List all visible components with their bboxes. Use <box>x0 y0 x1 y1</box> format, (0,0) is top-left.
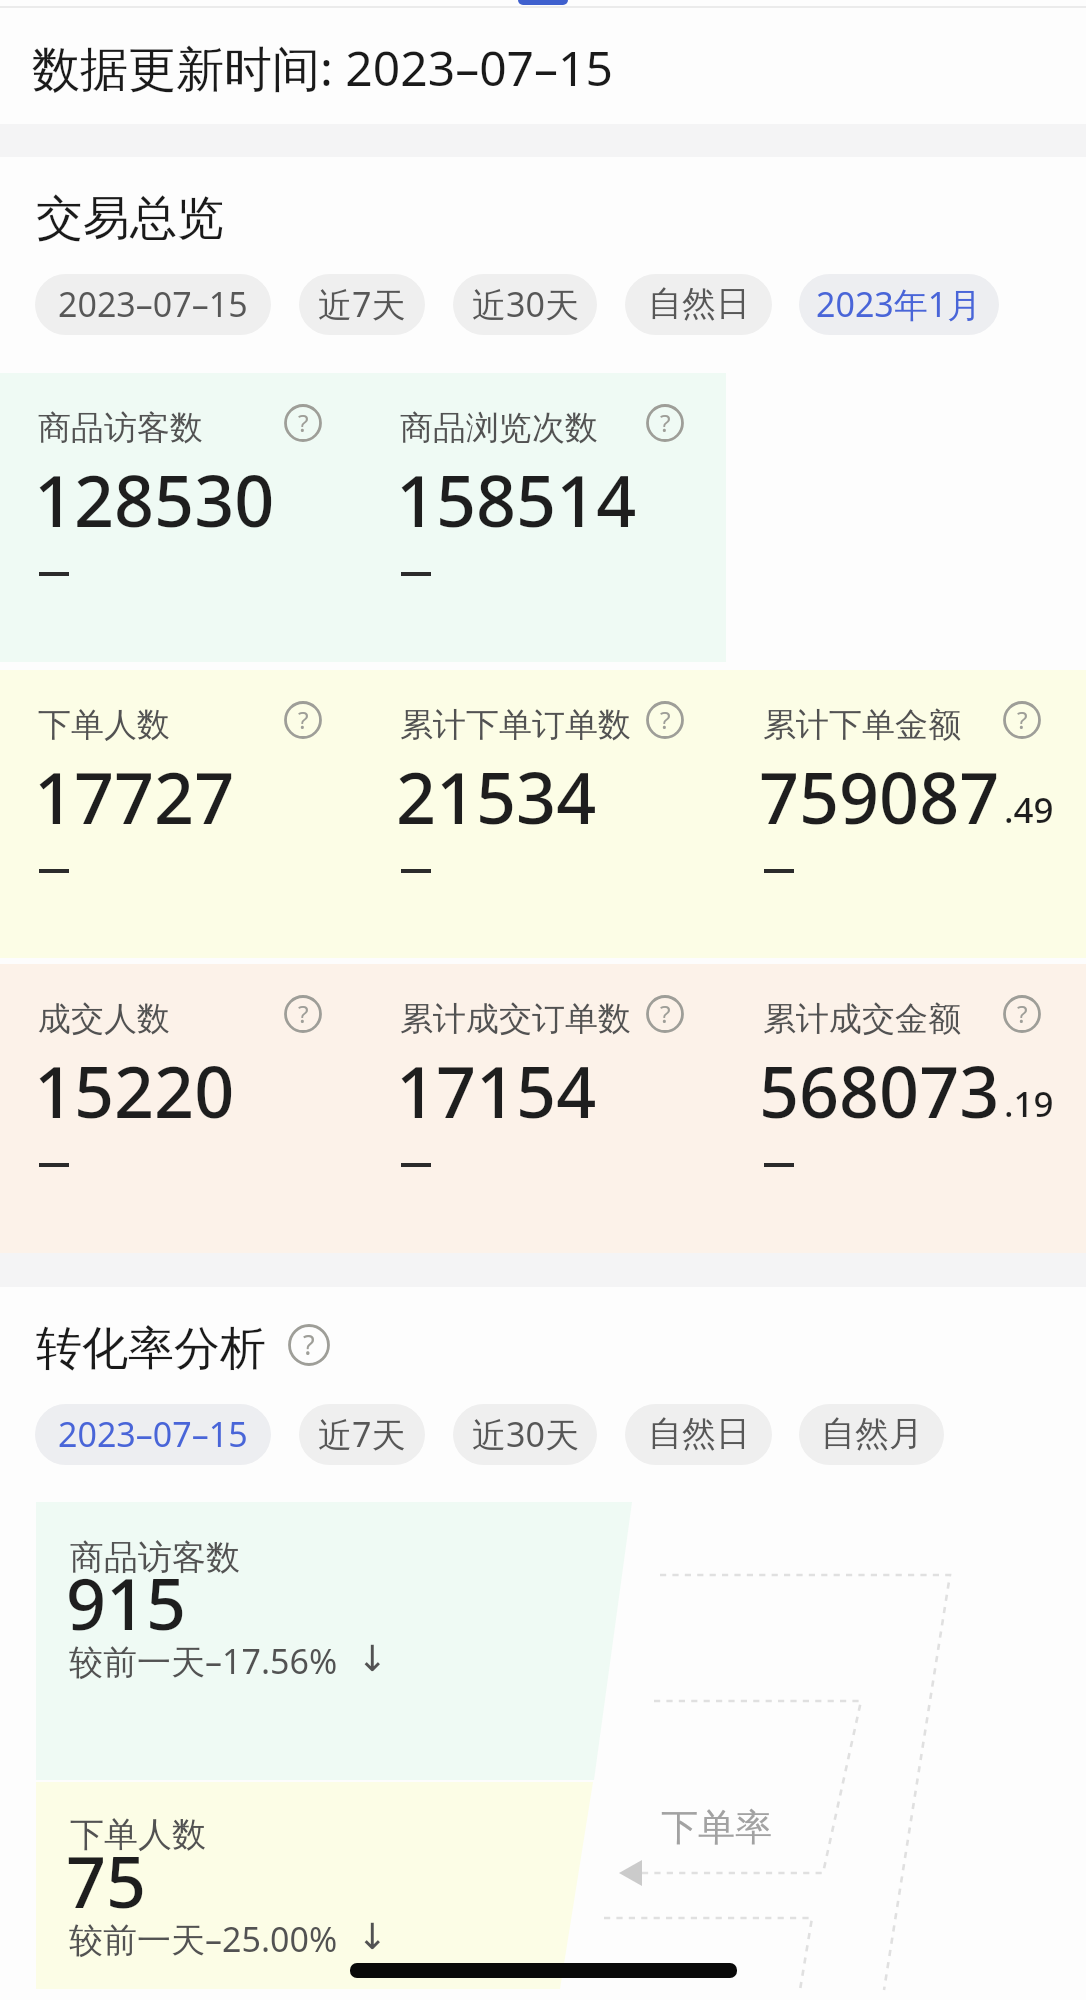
staticText: 下单人数 <box>38 704 170 746</box>
staticText: 累计成交金额 <box>763 998 961 1040</box>
staticText: 915 <box>66 1555 187 1650</box>
button[interactable]: 近30天 <box>453 274 597 335</box>
button[interactable]: 近30天 <box>453 1404 597 1465</box>
staticText: 自然日 <box>648 1412 750 1455</box>
staticText: 2023年1月 <box>816 281 982 327</box>
button[interactable]: 2023年1月 <box>799 274 999 335</box>
staticText: 交易总览 <box>36 189 224 248</box>
button[interactable]: 2023–07–15 <box>35 274 271 335</box>
staticText: ? <box>1017 997 1028 1030</box>
staticText: 15220 <box>34 1043 235 1138</box>
staticText: 累计下单订单数 <box>400 704 631 746</box>
staticText: 75 <box>66 1833 147 1928</box>
button[interactable]: 商品访客数 915 <box>36 1502 632 1780</box>
staticText: 759087 <box>759 749 1000 844</box>
button[interactable]: Help <box>284 995 322 1033</box>
button[interactable] <box>28 690 351 886</box>
staticText: 2023–07–15 <box>58 281 248 327</box>
staticText: ? <box>660 406 671 439</box>
button[interactable]: 自然日 <box>625 1404 772 1465</box>
staticText: ? <box>1017 703 1028 736</box>
staticText: 累计下单金额 <box>763 704 961 746</box>
staticText: 近30天 <box>472 1411 579 1457</box>
button[interactable]: Help <box>1003 701 1041 739</box>
button[interactable]: 近7天 <box>299 1404 425 1465</box>
button[interactable]: 下单人数 75 <box>36 1782 593 1989</box>
staticText: ↓ <box>357 1916 388 1958</box>
staticText: 21534 <box>396 749 597 844</box>
button[interactable] <box>753 984 1076 1180</box>
staticText: 158514 <box>396 452 637 547</box>
button[interactable] <box>390 690 713 886</box>
staticText: ↓ <box>357 1638 388 1680</box>
button[interactable]: 2023–07–15 <box>35 1404 271 1465</box>
staticText: ? <box>298 406 309 439</box>
staticText: 2023–07–15 <box>58 1411 248 1457</box>
staticText: 累计成交订单数 <box>400 998 631 1040</box>
button[interactable] <box>390 393 713 589</box>
staticText: 较前一天–25.00% <box>69 1916 338 1962</box>
staticText: 商品浏览次数 <box>400 407 598 449</box>
button[interactable]: 自然月 <box>799 1404 944 1465</box>
staticText: ? <box>660 997 671 1030</box>
staticText: 成交人数 <box>38 998 170 1040</box>
button[interactable]: Help <box>284 404 322 442</box>
button[interactable]: Help <box>646 995 684 1033</box>
button[interactable] <box>28 393 351 589</box>
staticText: 较前一天–17.56% <box>69 1638 338 1684</box>
button[interactable] <box>753 690 1076 886</box>
staticText: 数据更新时间: 2023–07–15 <box>32 35 613 101</box>
staticText: 下单人数 <box>70 1813 206 1856</box>
staticText: 自然月 <box>821 1412 923 1455</box>
staticText: ? <box>298 997 309 1030</box>
staticText: 128530 <box>34 452 275 547</box>
staticText: .49 <box>1004 786 1054 834</box>
staticText: 自然日 <box>648 282 750 325</box>
staticText: 17154 <box>396 1043 597 1138</box>
button[interactable]: Help <box>288 1324 330 1366</box>
staticText: ? <box>660 703 671 736</box>
staticText: 近30天 <box>472 281 579 327</box>
staticText: ? <box>298 703 309 736</box>
button[interactable] <box>28 984 351 1180</box>
staticText: 17727 <box>34 749 235 844</box>
staticText: 下单率 <box>661 1804 772 1851</box>
staticText: ? <box>303 1326 315 1363</box>
button[interactable]: 近7天 <box>299 274 425 335</box>
staticText: 商品访客数 <box>38 407 203 449</box>
button[interactable]: Help <box>646 404 684 442</box>
button[interactable]: 自然日 <box>625 274 772 335</box>
staticText: 568073 <box>759 1043 1000 1138</box>
button[interactable]: Help <box>284 701 322 739</box>
staticText: 近7天 <box>318 281 406 327</box>
staticText: .19 <box>1004 1080 1054 1128</box>
button[interactable] <box>390 984 713 1180</box>
button[interactable]: Help <box>1003 995 1041 1033</box>
button[interactable]: Help <box>646 701 684 739</box>
staticText: 近7天 <box>318 1411 406 1457</box>
staticText: 商品访客数 <box>70 1536 240 1579</box>
staticText: 转化率分析 <box>36 1320 266 1378</box>
